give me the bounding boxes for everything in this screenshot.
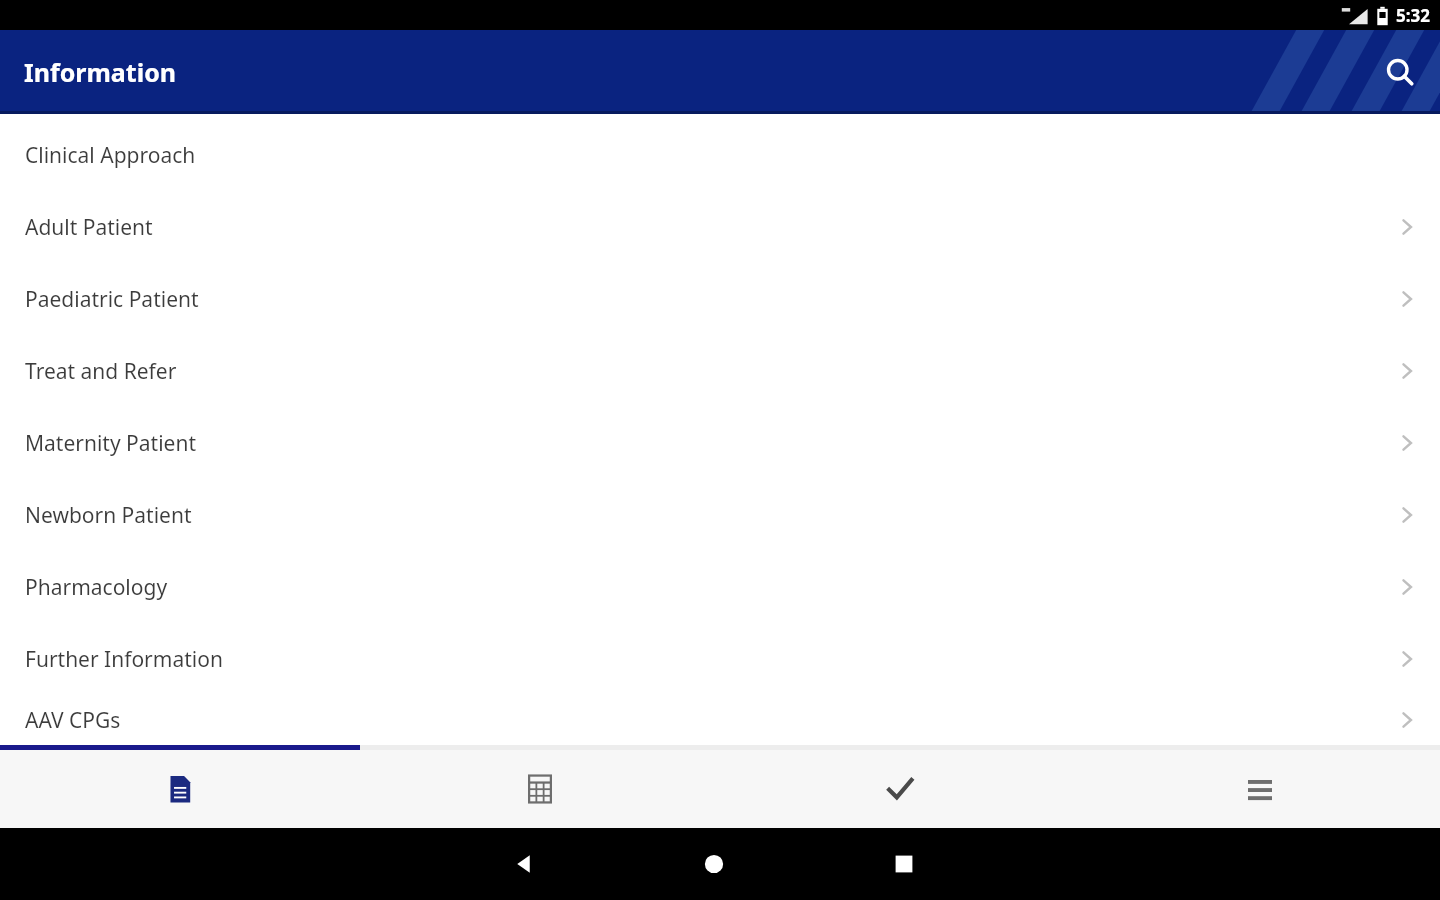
button[interactable]: AAV CPGs: [0, 695, 1440, 745]
button[interactable]: Back: [500, 840, 548, 888]
button[interactable]: Pharmacology: [0, 551, 1440, 623]
staticText: AAV CPGs: [25, 706, 121, 735]
staticText: Maternity Patient: [25, 429, 196, 458]
button[interactable]: Clinical Approach: [0, 119, 1440, 191]
staticText: Paediatric Patient: [25, 285, 199, 314]
button[interactable]: Paediatric Patient: [0, 263, 1440, 335]
staticText: Further Information: [25, 645, 223, 674]
button[interactable]: Menu: [1080, 750, 1440, 828]
staticText: Newborn Patient: [25, 501, 192, 530]
button[interactable]: Newborn Patient: [0, 479, 1440, 551]
staticText: 5:32: [1396, 4, 1430, 27]
staticText: Treat and Refer: [25, 357, 177, 386]
staticText: Information: [24, 55, 177, 89]
staticText: Adult Patient: [25, 213, 153, 242]
button[interactable]: Adult Patient: [0, 191, 1440, 263]
button[interactable]: Calculator: [360, 750, 720, 828]
button[interactable]: Checklist: [720, 750, 1080, 828]
button[interactable]: Further Information: [0, 623, 1440, 695]
button[interactable]: Home: [690, 840, 738, 888]
button[interactable]: Search: [1372, 44, 1428, 100]
staticText: Clinical Approach: [25, 141, 196, 170]
button[interactable]: Guidelines: [0, 750, 360, 828]
staticText: Pharmacology: [25, 573, 168, 602]
button[interactable]: Treat and Refer: [0, 335, 1440, 407]
button[interactable]: Maternity Patient: [0, 407, 1440, 479]
button[interactable]: Recent apps: [880, 840, 928, 888]
